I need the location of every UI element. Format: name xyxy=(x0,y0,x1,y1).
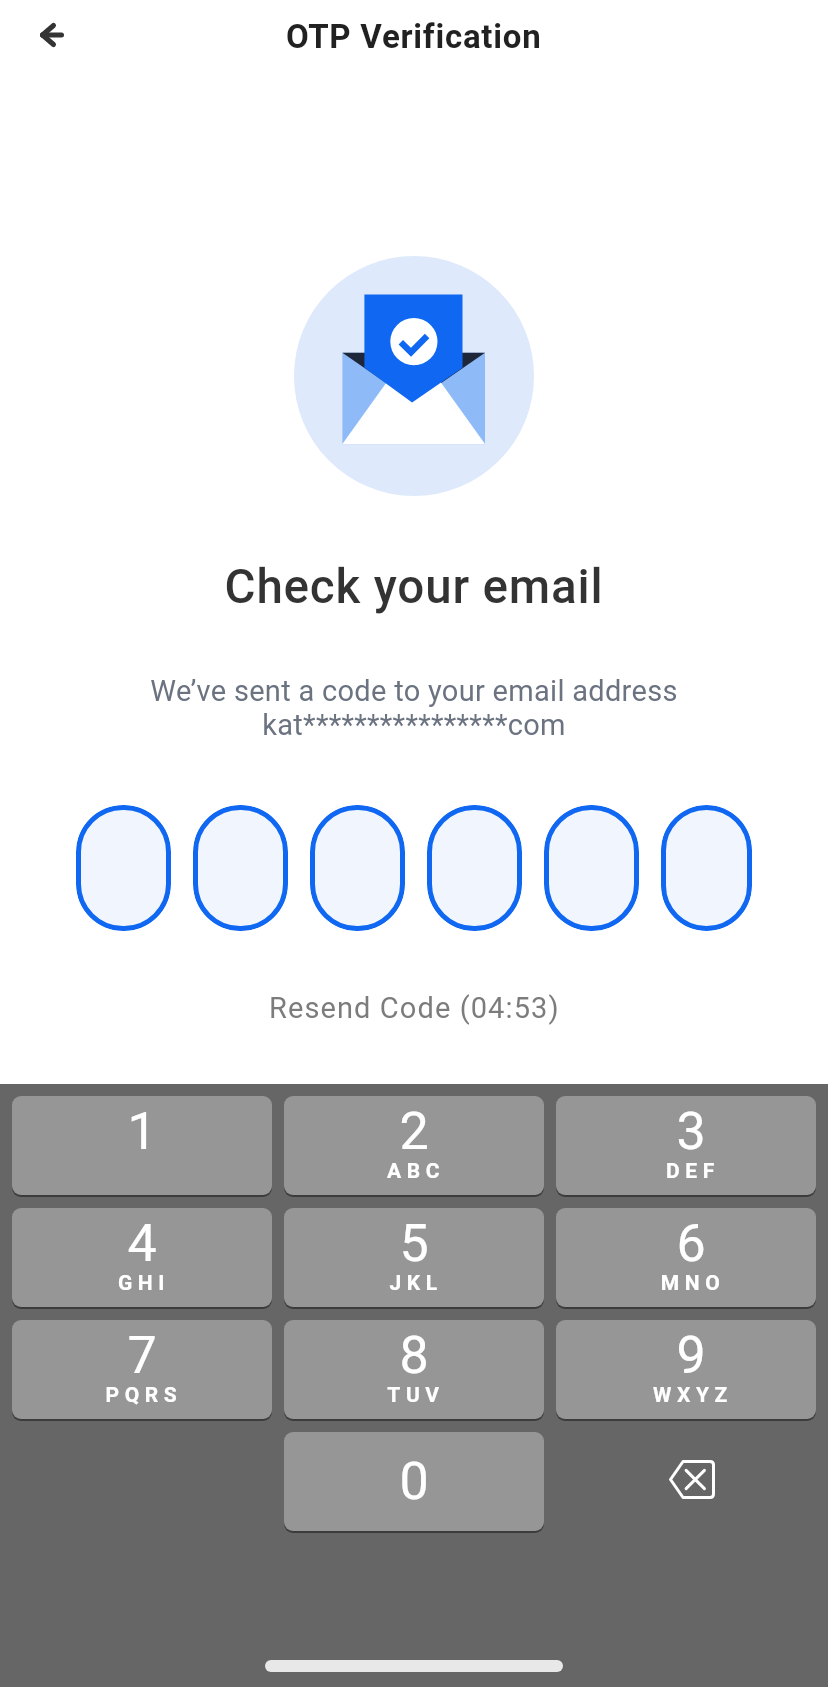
button[interactable]: 2 xyxy=(284,1096,544,1197)
button[interactable]: 6 xyxy=(556,1208,816,1309)
button[interactable]: 1 xyxy=(12,1096,272,1197)
staticText: 2 xyxy=(284,1101,544,1162)
staticText: MNO xyxy=(563,1271,823,1296)
staticText: GHI xyxy=(14,1271,274,1296)
button[interactable] xyxy=(193,805,288,931)
staticText: 8 xyxy=(284,1325,544,1386)
button[interactable]: 0 xyxy=(284,1432,544,1533)
staticText: 3 xyxy=(561,1101,821,1162)
button[interactable]: 3 xyxy=(556,1096,816,1197)
staticText: 1 xyxy=(12,1101,272,1162)
staticText: WXYZ xyxy=(563,1383,823,1408)
staticText: PQRS xyxy=(14,1383,274,1408)
button[interactable]: 5 xyxy=(284,1208,544,1309)
staticText: TUV xyxy=(286,1383,546,1408)
button[interactable] xyxy=(427,805,522,931)
staticText: Check your email xyxy=(0,559,828,615)
button[interactable]: Back xyxy=(22,5,82,65)
staticText: 9 xyxy=(561,1325,821,1386)
button[interactable] xyxy=(76,805,171,931)
staticText: We’ve sent a code to your email address … xyxy=(0,674,828,742)
staticText: JKL xyxy=(286,1271,546,1296)
staticText: ABC xyxy=(286,1159,546,1184)
button[interactable] xyxy=(310,805,405,931)
button[interactable] xyxy=(661,805,752,931)
button[interactable]: 9 xyxy=(556,1320,816,1421)
staticText: 6 xyxy=(561,1213,821,1274)
button[interactable]: Backspace xyxy=(556,1432,816,1531)
staticText: 5 xyxy=(284,1213,544,1274)
staticText: 4 xyxy=(12,1213,272,1274)
staticText: Resend Code (04:53) xyxy=(269,991,560,1025)
staticText: OTP Verification xyxy=(286,17,542,56)
button[interactable] xyxy=(544,805,639,931)
staticText: 7 xyxy=(12,1325,272,1386)
staticText: 0 xyxy=(284,1451,544,1512)
button[interactable]: 4 xyxy=(12,1208,272,1309)
button[interactable]: 7 xyxy=(12,1320,272,1421)
button[interactable]: 8 xyxy=(284,1320,544,1421)
button[interactable]: Resend Code (04:53) xyxy=(259,985,570,1031)
staticText: DEF xyxy=(563,1159,823,1184)
